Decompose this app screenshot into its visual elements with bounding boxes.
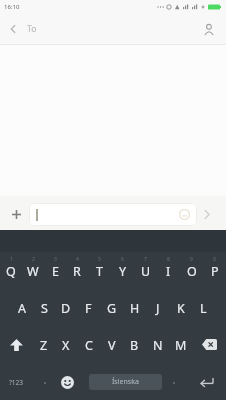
button[interactable] <box>194 373 218 391</box>
button[interactable]: 1 <box>0 252 22 289</box>
button[interactable] <box>6 22 20 36</box>
staticText: X <box>62 337 70 354</box>
staticText: 3 <box>54 256 57 263</box>
button[interactable]: 0 <box>203 252 226 289</box>
staticText: 5 <box>98 256 101 263</box>
button[interactable]: M <box>169 326 192 363</box>
staticText: 0 <box>213 256 216 263</box>
staticText: T <box>96 263 103 280</box>
staticText: O <box>187 263 197 280</box>
button[interactable]: H <box>123 289 146 326</box>
staticText: R <box>73 263 81 280</box>
staticText: M <box>175 337 187 354</box>
staticText: D <box>61 300 71 317</box>
staticText: L <box>200 300 207 317</box>
button[interactable]: 7 <box>134 252 157 289</box>
button[interactable]: A <box>11 289 33 326</box>
button[interactable]: Z <box>33 326 55 363</box>
staticText: 9 <box>190 256 193 263</box>
staticText: 2 <box>32 256 35 263</box>
staticText: H <box>130 300 140 317</box>
button[interactable]: N <box>146 326 169 363</box>
staticText: 1 <box>10 256 13 263</box>
staticText: F <box>85 300 92 317</box>
button[interactable]: B <box>123 326 146 363</box>
button[interactable]: 6 <box>111 252 134 289</box>
button[interactable]: 3 <box>44 252 66 289</box>
staticText: C <box>85 337 93 354</box>
staticText: I <box>166 263 171 280</box>
staticText: 4 <box>76 256 79 263</box>
button[interactable]: K <box>169 289 192 326</box>
staticText: Y <box>119 263 127 280</box>
button[interactable]: X <box>55 326 77 363</box>
staticText: A <box>18 300 26 317</box>
button[interactable]: 5 <box>88 252 111 289</box>
button[interactable]: 9 <box>180 252 203 289</box>
staticText: W <box>27 263 39 280</box>
staticText: ?123 <box>9 378 23 387</box>
staticText: V <box>108 337 116 354</box>
staticText: Z <box>40 337 48 354</box>
staticText: J <box>156 300 160 317</box>
button[interactable] <box>0 326 33 363</box>
staticText: N <box>153 337 163 354</box>
button[interactable]: G <box>100 289 123 326</box>
button[interactable]: V <box>100 326 123 363</box>
staticText: 6 <box>121 256 124 263</box>
staticText: P <box>211 263 219 280</box>
staticText: Q <box>6 263 16 280</box>
button[interactable]: 2 <box>22 252 44 289</box>
staticText: 8 <box>167 256 170 263</box>
button[interactable] <box>198 205 216 223</box>
button[interactable]: Íslenska <box>89 374 162 390</box>
staticText: To <box>27 23 37 35</box>
button[interactable]: ?123 <box>2 374 30 390</box>
button[interactable]: F <box>77 289 100 326</box>
button[interactable]: C <box>77 326 100 363</box>
button[interactable]: D <box>55 289 77 326</box>
button[interactable]: J <box>146 289 169 326</box>
button[interactable] <box>6 204 26 224</box>
button[interactable]: L <box>192 289 215 326</box>
staticText: Íslenska <box>112 377 139 387</box>
staticText: U <box>141 263 151 280</box>
button[interactable] <box>29 203 197 226</box>
staticText: 7 <box>144 256 147 263</box>
staticText: K <box>177 300 185 317</box>
staticText: G <box>107 300 117 317</box>
button[interactable]: 8 <box>157 252 180 289</box>
staticText: S <box>41 300 48 317</box>
staticText: E <box>52 263 59 280</box>
button[interactable] <box>192 326 226 363</box>
staticText: B <box>130 337 139 354</box>
button[interactable] <box>201 21 217 37</box>
button[interactable]: S <box>33 289 55 326</box>
button[interactable] <box>59 374 75 390</box>
button[interactable]: 4 <box>66 252 88 289</box>
staticText: 16:10 <box>4 3 20 11</box>
